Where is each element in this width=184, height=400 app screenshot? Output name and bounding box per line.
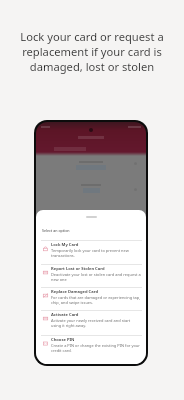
staticText: Lock My Card [51,242,79,248]
staticText: Replace Damaged Card [51,289,98,295]
button[interactable]: Report Lost or Stolen Card [36,264,146,287]
staticText: Temporarily lock your card to prevent ne… [51,248,141,258]
staticText: Deactivate your lost or stolen card and … [51,272,141,282]
staticText: Create a PIN or change the existing PIN … [51,343,141,353]
staticText: Activate Card [51,312,79,318]
button[interactable]: Choose PIN [36,335,146,361]
staticText: Activate your newly received card and st… [51,318,141,328]
staticText: Select an option [42,228,70,233]
button[interactable]: Replace Damaged Card [36,287,146,311]
staticText: Lock your card or request a replacement … [10,29,174,74]
staticText: Choose PIN [51,337,75,343]
staticText: Report Lost or Stolen Card [51,266,105,272]
staticText: For cards that are damaged or experienci… [51,295,141,305]
button[interactable]: Activate Card [36,310,146,335]
button[interactable]: Lock My Card [36,240,146,264]
